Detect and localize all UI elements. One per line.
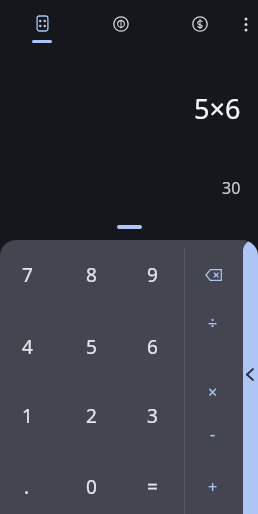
staticText: . bbox=[24, 474, 30, 500]
button[interactable]: ÷ bbox=[189, 299, 237, 347]
button[interactable]: 5 bbox=[63, 319, 119, 375]
button[interactable]: Unit converter bbox=[97, 0, 145, 50]
button[interactable]: 2 bbox=[63, 388, 119, 444]
button[interactable]: Show history bbox=[243, 240, 258, 514]
button[interactable]: × bbox=[189, 368, 237, 416]
button[interactable]: Calculator bbox=[18, 0, 66, 50]
button[interactable]: + bbox=[189, 463, 237, 511]
staticText: - bbox=[210, 423, 216, 445]
button[interactable]: 4 bbox=[0, 319, 55, 375]
staticText: 2 bbox=[86, 403, 97, 429]
staticText: × bbox=[208, 381, 218, 403]
button[interactable]: - bbox=[189, 410, 237, 458]
button[interactable]: = bbox=[124, 459, 180, 514]
staticText: 5×6 bbox=[194, 90, 241, 127]
button[interactable]: 0 bbox=[63, 459, 119, 514]
staticText: + bbox=[208, 476, 218, 498]
button[interactable]: 3 bbox=[124, 388, 180, 444]
staticText: 0 bbox=[86, 474, 97, 500]
staticText: 9 bbox=[147, 262, 158, 288]
staticText: 30 bbox=[222, 177, 241, 199]
button[interactable]: 8 bbox=[63, 247, 119, 303]
button[interactable]: 1 bbox=[0, 388, 55, 444]
staticText: 7 bbox=[22, 262, 33, 288]
button[interactable]: . bbox=[0, 459, 55, 514]
staticText: 1 bbox=[22, 403, 33, 429]
button[interactable]: 6 bbox=[124, 319, 180, 375]
button[interactable]: Backspace bbox=[189, 251, 237, 299]
button[interactable]: 7 bbox=[0, 247, 55, 303]
staticText: ÷ bbox=[208, 312, 218, 334]
button[interactable]: Currency converter bbox=[176, 0, 224, 50]
staticText: 4 bbox=[22, 334, 33, 360]
button[interactable]: Expand keypad bbox=[117, 225, 142, 229]
staticText: 3 bbox=[147, 403, 158, 429]
staticText: 8 bbox=[86, 262, 97, 288]
staticText: 6 bbox=[147, 334, 158, 360]
button[interactable]: More options bbox=[234, 0, 258, 50]
staticText: = bbox=[147, 474, 158, 500]
staticText: 5 bbox=[86, 334, 97, 360]
button[interactable]: 9 bbox=[124, 247, 180, 303]
